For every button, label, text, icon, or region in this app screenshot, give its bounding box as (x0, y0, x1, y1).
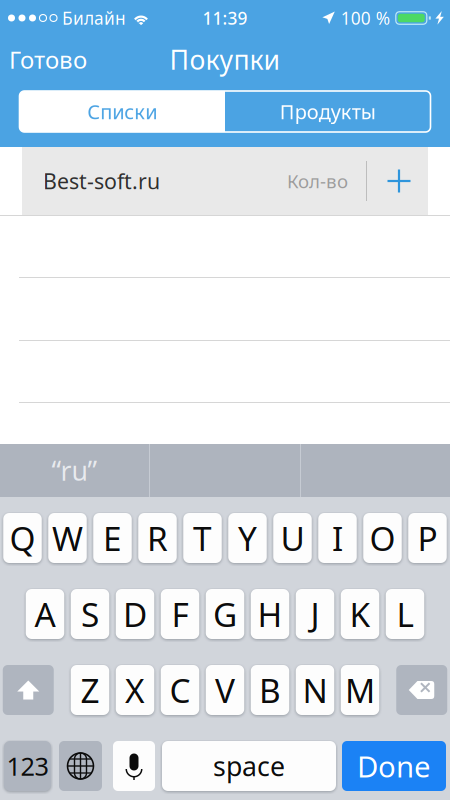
staticText: Готово (9, 44, 87, 75)
staticText: I (332, 516, 343, 560)
button[interactable]: T (183, 513, 222, 563)
button[interactable]: M (341, 665, 379, 715)
button[interactable]: L (386, 589, 424, 639)
staticText: N (302, 668, 327, 712)
staticText: Покупки (169, 42, 280, 77)
button[interactable]: Delete (396, 665, 447, 715)
button[interactable]: P (408, 513, 447, 563)
staticText: space (213, 748, 285, 784)
staticText: Списки (87, 98, 157, 125)
staticText: Done (357, 746, 431, 785)
button[interactable]: Готово (1, 39, 95, 80)
staticText: O (369, 516, 395, 560)
button[interactable]: C (161, 665, 199, 715)
staticText: Продукты (280, 98, 376, 125)
staticText: B (259, 668, 281, 712)
staticText: S (81, 592, 99, 636)
button[interactable]: Switch keyboard (59, 741, 102, 791)
staticText: M (345, 668, 375, 712)
staticText: G (213, 592, 237, 636)
staticText: X (125, 668, 145, 712)
button[interactable]: space (162, 741, 336, 791)
button[interactable]: Q (3, 513, 42, 563)
staticText: C (169, 668, 190, 712)
staticText: Z (80, 668, 99, 712)
staticText: “ru” (51, 453, 97, 488)
button[interactable]: G (206, 589, 244, 639)
staticText: E (103, 516, 122, 560)
staticText: T (193, 516, 212, 560)
button[interactable]: Shift (3, 665, 54, 715)
staticText: D (123, 592, 147, 636)
staticText: P (417, 516, 437, 560)
staticText: Q (9, 516, 35, 560)
staticText: R (147, 516, 168, 560)
button[interactable]: F (161, 589, 199, 639)
button[interactable]: H (251, 589, 289, 639)
staticText: 123 (6, 749, 48, 783)
button[interactable]: S (71, 589, 109, 639)
button[interactable]: X (116, 665, 154, 715)
staticText: Билайн (62, 6, 126, 29)
button[interactable]: Y (228, 513, 267, 563)
button[interactable]: J (296, 589, 334, 639)
button[interactable]: V (206, 665, 244, 715)
staticText: J (310, 592, 319, 636)
button[interactable]: Add item (384, 166, 414, 196)
button[interactable]: Продукты (225, 91, 430, 132)
button[interactable]: D (116, 589, 154, 639)
button[interactable]: U (273, 513, 312, 563)
button[interactable]: “ru” (0, 444, 149, 497)
button[interactable]: B (251, 665, 289, 715)
button[interactable]: Списки (19, 91, 225, 132)
staticText: F (171, 592, 188, 636)
staticText: Y (238, 516, 257, 560)
button[interactable]: R (138, 513, 177, 563)
button[interactable]: I (318, 513, 357, 563)
button[interactable]: Z (71, 665, 109, 715)
button[interactable]: W (48, 513, 87, 563)
staticText: A (34, 592, 55, 636)
button[interactable]: 123 (4, 741, 51, 791)
staticText: Кол-во (287, 169, 348, 193)
button[interactable]: N (296, 665, 334, 715)
button[interactable]: K (341, 589, 379, 639)
button[interactable]: Dictate (113, 741, 155, 791)
staticText: 11:39 (202, 6, 247, 29)
staticText: Best-soft.ru (43, 167, 160, 195)
staticText: W (52, 516, 83, 560)
staticText: K (349, 592, 370, 636)
button[interactable]: E (93, 513, 132, 563)
staticText: 100 % (341, 6, 390, 29)
staticText: V (215, 668, 235, 712)
staticText: H (257, 592, 282, 636)
button[interactable]: Done (342, 741, 446, 791)
button[interactable]: A (26, 589, 64, 639)
button[interactable]: O (363, 513, 402, 563)
staticText: U (280, 516, 304, 560)
staticText: L (396, 592, 413, 636)
